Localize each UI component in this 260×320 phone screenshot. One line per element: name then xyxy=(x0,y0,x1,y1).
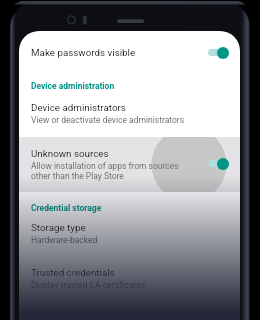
button[interactable]: Make passwords visible xyxy=(19,36,240,65)
staticText: Device administration xyxy=(31,81,115,91)
button[interactable]: Unknown sources xyxy=(19,137,240,192)
staticText: Storage type xyxy=(31,222,86,233)
staticText: Passwords xyxy=(31,31,73,33)
staticText: Display trusted CA certificates xyxy=(31,280,146,290)
staticText: Allow installation of apps from sources … xyxy=(31,161,179,181)
button[interactable]: Toggle unknown sources xyxy=(208,155,239,172)
staticText: Device administrators xyxy=(31,102,126,113)
staticText: Hardware-backed xyxy=(31,235,98,245)
button[interactable]: Storage type xyxy=(19,217,240,248)
staticText: Trusted credentials xyxy=(31,267,115,278)
button[interactable]: Trusted credentials xyxy=(19,262,240,293)
staticText: Credential storage xyxy=(31,203,102,213)
button[interactable]: Toggle make passwords visible xyxy=(208,44,239,61)
staticText: Unknown sources xyxy=(31,148,109,159)
staticText: View or deactivate device administrators xyxy=(31,115,185,125)
staticText: Make passwords visible xyxy=(31,47,136,58)
button[interactable]: Device administrators xyxy=(19,97,240,128)
